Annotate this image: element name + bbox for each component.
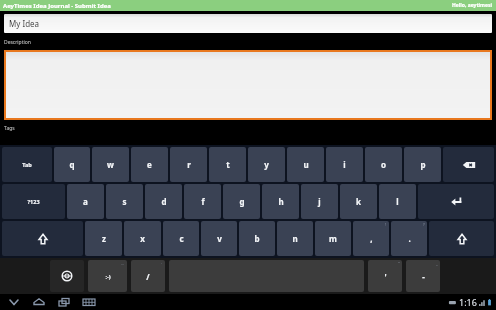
- staticText: b: [254, 233, 260, 244]
- button[interactable]: Shift: [429, 221, 494, 256]
- staticText: f: [201, 196, 205, 207]
- button[interactable]: Keyboard: [81, 294, 97, 310]
- button[interactable]: s: [106, 184, 143, 219]
- staticText: g: [239, 196, 245, 207]
- staticText: n: [292, 233, 298, 244]
- staticText: r: [187, 159, 191, 170]
- staticText: Tab: [22, 161, 32, 168]
- button[interactable]: u: [287, 147, 324, 182]
- staticText: .: [408, 233, 411, 244]
- button[interactable]: g: [223, 184, 260, 219]
- staticText: h: [278, 196, 284, 207]
- button[interactable]: Enter: [418, 184, 494, 219]
- button[interactable]: ": [368, 260, 402, 292]
- button[interactable]: Delete: [443, 147, 494, 182]
- button[interactable]: h: [262, 184, 299, 219]
- staticText: y: [264, 159, 269, 170]
- button[interactable]: x: [124, 221, 161, 256]
- staticText: ,: [370, 233, 373, 244]
- button[interactable]: _: [406, 260, 440, 292]
- staticText: a: [83, 196, 88, 207]
- staticText: ...: [121, 261, 125, 266]
- staticText: s: [122, 196, 127, 207]
- button[interactable]: !: [353, 221, 389, 256]
- staticText: ·: [161, 261, 163, 266]
- button[interactable]: i: [326, 147, 363, 182]
- staticText: x: [140, 233, 145, 244]
- staticText: k: [356, 196, 361, 207]
- staticText: l: [396, 196, 399, 207]
- button[interactable]: [6, 52, 490, 118]
- button[interactable]: ...: [88, 260, 127, 292]
- button[interactable]: j: [301, 184, 338, 219]
- staticText: j: [318, 196, 321, 207]
- staticText: e: [147, 159, 152, 170]
- staticText: d: [161, 196, 167, 207]
- button[interactable]: c: [163, 221, 199, 256]
- button[interactable]: m: [315, 221, 351, 256]
- button[interactable]: z: [85, 221, 122, 256]
- staticText: p: [420, 159, 426, 170]
- staticText: Hello, aeytimesi: [452, 2, 492, 9]
- button[interactable]: AeyTimes Idea Journal - Submit Idea: [0, 0, 496, 11]
- button[interactable]: Tab: [2, 147, 52, 182]
- button[interactable]: ?123: [2, 184, 65, 219]
- staticText: ?123: [27, 198, 40, 205]
- staticText: _: [436, 261, 438, 266]
- staticText: ': [384, 271, 387, 282]
- button[interactable]: r: [170, 147, 207, 182]
- button[interactable]: v: [201, 221, 237, 256]
- staticText: Description: [4, 39, 31, 46]
- staticText: 1:16: [459, 296, 477, 308]
- staticText: t: [226, 159, 230, 170]
- staticText: i: [343, 159, 346, 170]
- button[interactable]: f: [184, 184, 221, 219]
- staticText: -: [422, 271, 425, 282]
- button[interactable]: k: [340, 184, 377, 219]
- staticText: Tags: [4, 125, 15, 132]
- button[interactable]: Recent apps: [56, 294, 72, 310]
- button[interactable]: b: [239, 221, 275, 256]
- button[interactable]: Shift: [2, 221, 83, 256]
- staticText: w: [107, 159, 114, 170]
- button[interactable]: ?: [391, 221, 427, 256]
- button[interactable]: q: [54, 147, 90, 182]
- staticText: My Idea: [9, 18, 40, 29]
- button[interactable]: w: [92, 147, 129, 182]
- button[interactable]: t: [209, 147, 246, 182]
- button[interactable]: e: [131, 147, 168, 182]
- staticText: o: [381, 159, 386, 170]
- staticText: ?: [423, 222, 425, 227]
- button[interactable]: My Idea: [4, 14, 492, 33]
- staticText: ": [398, 261, 400, 266]
- staticText: c: [179, 233, 184, 244]
- staticText: v: [217, 233, 222, 244]
- staticText: :-): [105, 273, 111, 280]
- button[interactable]: a: [67, 184, 104, 219]
- button[interactable]: l: [379, 184, 416, 219]
- staticText: AeyTimes Idea Journal - Submit Idea: [3, 2, 111, 10]
- staticText: !: [385, 222, 387, 227]
- button[interactable]: d: [145, 184, 182, 219]
- button[interactable]: ·: [131, 260, 165, 292]
- button[interactable]: Home: [31, 294, 47, 310]
- staticText: m: [329, 233, 337, 244]
- button[interactable]: o: [365, 147, 402, 182]
- button[interactable]: y: [248, 147, 285, 182]
- button[interactable]: p: [404, 147, 441, 182]
- button[interactable]: Hide keyboard: [6, 294, 22, 310]
- button[interactable]: Input method: [50, 260, 84, 292]
- staticText: z: [102, 233, 106, 244]
- staticText: q: [69, 159, 75, 170]
- staticText: /: [146, 271, 150, 282]
- staticText: u: [303, 159, 309, 170]
- button[interactable]: n: [277, 221, 313, 256]
